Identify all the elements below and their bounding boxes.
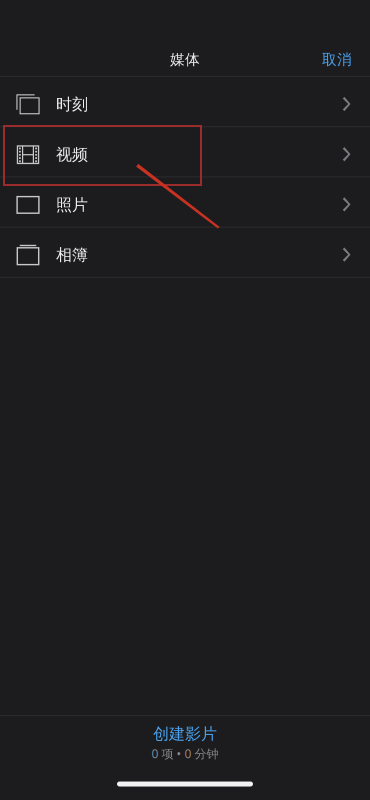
button[interactable]: 照片 — [0, 177, 370, 228]
staticText: 照片 — [56, 195, 88, 215]
staticText: 时刻 — [56, 95, 88, 114]
button[interactable]: 取消 — [304, 35, 370, 76]
staticText: 相簿 — [56, 245, 88, 265]
staticText: 媒体 — [170, 50, 200, 68]
staticText: 创建影片 — [153, 724, 217, 744]
button[interactable]: 时刻 — [0, 77, 370, 127]
staticText: 0 项 • 0 分钟 — [151, 746, 218, 762]
staticText: 视频 — [56, 145, 88, 164]
button[interactable]: 视频 — [0, 127, 370, 177]
staticText: 取消 — [322, 50, 352, 68]
button[interactable]: 创建影片 — [0, 716, 370, 768]
button[interactable]: 相簿 — [0, 228, 370, 278]
